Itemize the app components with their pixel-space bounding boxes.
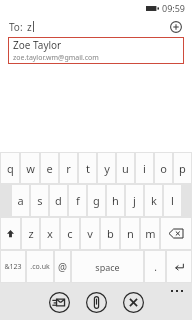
button[interactable]: d <box>50 185 67 216</box>
staticText: g <box>93 193 100 208</box>
button[interactable]: i <box>136 153 153 183</box>
button[interactable]: space <box>72 251 143 282</box>
staticText: 09:59 <box>162 2 186 14</box>
staticText: @ <box>58 260 67 274</box>
button[interactable]: @ <box>55 251 70 282</box>
button[interactable]: s <box>31 185 48 216</box>
staticText: l <box>171 193 174 208</box>
staticText: k <box>151 193 157 208</box>
button[interactable]: Close <box>120 289 146 315</box>
button[interactable]: e <box>41 153 58 183</box>
button[interactable]: key <box>161 218 191 249</box>
button[interactable]: &123 <box>1 251 25 282</box>
button[interactable]: To: <box>0 16 192 37</box>
staticText: e <box>46 161 53 176</box>
staticText: p <box>179 161 186 176</box>
staticText: &123 <box>4 262 22 272</box>
staticText: i <box>143 161 146 176</box>
button[interactable]: o <box>155 153 172 183</box>
staticText: To: <box>9 20 23 34</box>
staticText: r <box>66 161 71 176</box>
button[interactable]: . <box>145 251 165 282</box>
button[interactable]: p <box>174 153 191 183</box>
staticText: f <box>76 193 80 208</box>
button[interactable]: n <box>121 218 139 249</box>
button[interactable]: a <box>12 185 29 216</box>
staticText: c <box>67 226 73 241</box>
staticText: d <box>55 193 62 208</box>
button[interactable]: r <box>60 153 77 183</box>
staticText: z <box>28 226 34 241</box>
staticText: w <box>26 161 35 176</box>
button[interactable]: c <box>61 218 79 249</box>
staticText: zoe.taylor.wm@gmail.com <box>13 53 99 63</box>
staticText: z <box>27 20 32 34</box>
staticText: u <box>122 161 129 176</box>
button[interactable]: t <box>79 153 96 183</box>
button[interactable]: Add recipient <box>165 16 187 37</box>
button[interactable]: k <box>145 185 162 216</box>
staticText: . <box>154 260 157 274</box>
button[interactable]: w <box>21 153 39 183</box>
button[interactable]: key <box>167 251 191 282</box>
staticText: n <box>127 226 134 241</box>
button[interactable]: .co.uk <box>27 251 53 282</box>
button[interactable]: u <box>117 153 134 183</box>
staticText: m <box>145 226 156 241</box>
staticText: s <box>37 193 43 208</box>
button[interactable]: l <box>164 185 181 216</box>
button[interactable]: h <box>107 185 124 216</box>
staticText: q <box>7 161 14 176</box>
button[interactable]: x <box>41 218 59 249</box>
button[interactable]: Attach <box>83 289 109 315</box>
button[interactable]: Zoe Taylor <box>8 37 184 64</box>
staticText: t <box>86 161 90 176</box>
staticText: a <box>17 193 24 208</box>
button[interactable]: m <box>141 218 159 249</box>
staticText: b <box>107 226 114 241</box>
button[interactable]: q <box>1 153 19 183</box>
button[interactable]: key <box>1 218 20 249</box>
staticText: j <box>133 193 136 208</box>
staticText: y <box>104 161 110 176</box>
staticText: Zoe Taylor <box>13 38 62 52</box>
button[interactable]: z <box>22 218 39 249</box>
staticText: h <box>112 193 119 208</box>
button[interactable]: b <box>101 218 119 249</box>
button[interactable]: More <box>170 289 184 293</box>
button[interactable]: Send <box>46 289 72 315</box>
button[interactable]: g <box>88 185 105 216</box>
button[interactable]: v <box>81 218 99 249</box>
button[interactable]: y <box>98 153 115 183</box>
staticText: o <box>160 161 167 176</box>
staticText: space <box>95 261 120 273</box>
staticText: x <box>47 226 53 241</box>
button[interactable]: f <box>69 185 86 216</box>
staticText: .co.uk <box>30 262 50 272</box>
staticText: v <box>87 226 93 241</box>
button[interactable]: j <box>126 185 143 216</box>
